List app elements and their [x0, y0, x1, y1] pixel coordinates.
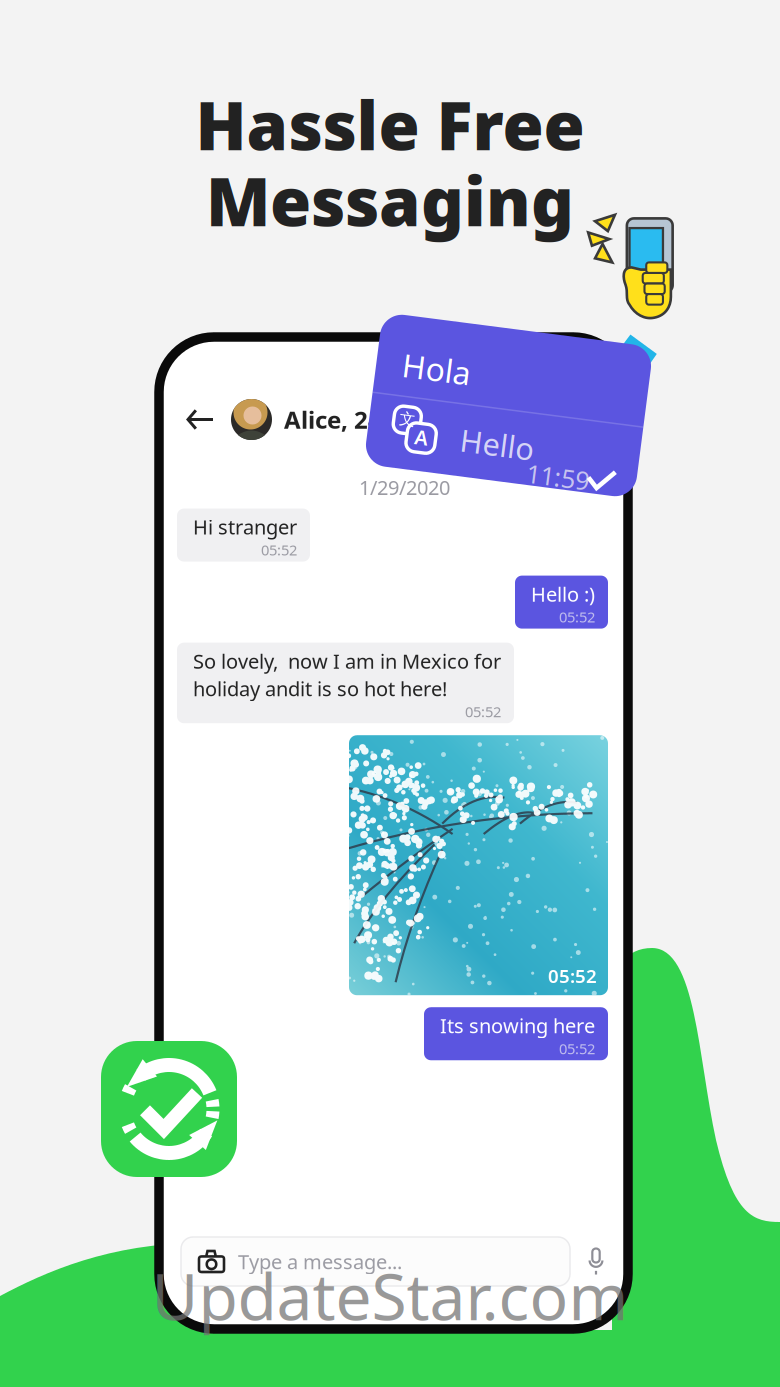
- staticText: 11:59: [535, 453, 598, 487]
- staticText: 05:52: [261, 540, 297, 560]
- staticText: Messaging: [206, 156, 574, 244]
- staticText: Type a message...: [238, 1248, 402, 1275]
- staticText: 文: [402, 422, 418, 442]
- staticText: 05:52: [559, 1039, 595, 1058]
- staticText: Hassle Free: [195, 80, 584, 168]
- staticText: Alice, 24: [284, 404, 382, 435]
- button[interactable]: Type a message...: [181, 1237, 570, 1286]
- staticText: 05:52: [559, 607, 595, 627]
- staticText: So lovely, now I am in Mexico for: [193, 648, 501, 674]
- staticText: UpdateStar.com: [151, 1253, 628, 1338]
- staticText: Hello :): [531, 581, 595, 607]
- staticText: A: [419, 435, 432, 461]
- staticText: Hi stranger: [193, 514, 297, 540]
- button[interactable]: Back: [179, 401, 221, 437]
- staticText: 05:52: [548, 963, 597, 988]
- staticText: 1/29/2020: [359, 474, 450, 501]
- staticText: Hello: [465, 425, 540, 466]
- staticText: holiday andit is so hot here!: [193, 675, 447, 702]
- staticText: 05:52: [465, 702, 501, 721]
- button[interactable]: Record voice message: [580, 1240, 612, 1282]
- staticText: Its snowing here: [440, 1012, 595, 1039]
- staticText: Hola: [398, 357, 467, 399]
